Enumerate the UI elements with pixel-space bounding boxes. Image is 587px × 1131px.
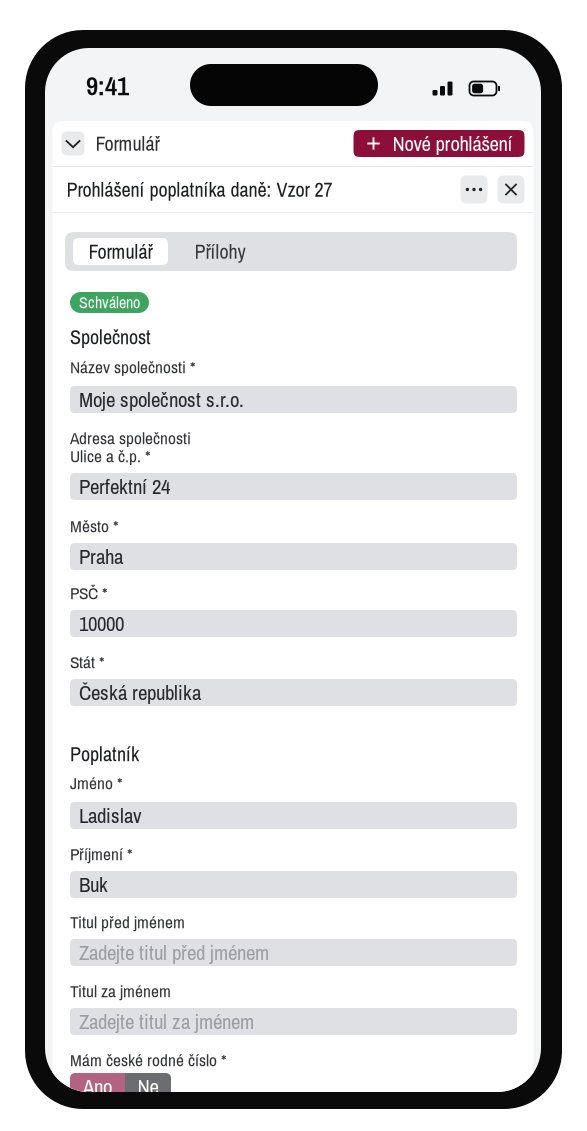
button[interactable]: Close	[497, 175, 524, 203]
button[interactable]: Collapse section	[61, 131, 84, 155]
button[interactable]: Formulář	[73, 238, 168, 265]
button[interactable]: Ano	[70, 1073, 125, 1100]
staticText: Moje společnost s.r.o.	[79, 385, 244, 413]
staticText: Zadejte titul před jménem	[79, 938, 269, 966]
button[interactable]: Ne	[125, 1073, 171, 1100]
staticText: Ne	[137, 1072, 158, 1100]
staticText: Ladislav	[79, 801, 142, 829]
staticText: Zadejte titul za jménem	[79, 1007, 254, 1035]
staticText: Město *	[70, 514, 119, 538]
staticText: Titul za jménem	[70, 979, 171, 1003]
staticText: Ano	[83, 1072, 112, 1100]
button[interactable]: Přílohy	[168, 238, 272, 265]
staticText: 9:41	[86, 67, 129, 103]
staticText: Příjmení *	[70, 842, 133, 866]
staticText: Mám české rodné číslo *	[70, 1048, 227, 1072]
button[interactable]: Nové prohlášení	[353, 130, 524, 157]
staticText: Jméno *	[70, 771, 123, 795]
staticText: 10000	[79, 609, 124, 637]
staticText: Poplatník	[70, 740, 139, 767]
staticText: Prohlášení poplatníka daně: Vzor 27	[66, 176, 332, 203]
button[interactable]: More options	[460, 175, 487, 203]
staticText: Nové prohlášení	[392, 130, 512, 157]
staticText: Společnost	[70, 323, 151, 350]
staticText: Ulice a č.p. *	[70, 444, 151, 468]
staticText: Perfektní 24	[79, 472, 170, 500]
staticText: Česká republika	[79, 678, 201, 706]
staticText: Formulář	[88, 238, 152, 265]
staticText: Schváleno	[79, 292, 140, 313]
staticText: Název společnosti *	[70, 355, 196, 379]
staticText: Stát *	[70, 650, 105, 674]
staticText: PSČ *	[70, 581, 108, 605]
staticText: Titul před jménem	[70, 910, 185, 934]
staticText: Adresa společnosti	[70, 426, 191, 450]
staticText: Buk	[79, 870, 108, 898]
staticText: Přílohy	[194, 238, 245, 265]
staticText: Praha	[79, 542, 123, 570]
staticText: Formulář	[95, 130, 159, 157]
